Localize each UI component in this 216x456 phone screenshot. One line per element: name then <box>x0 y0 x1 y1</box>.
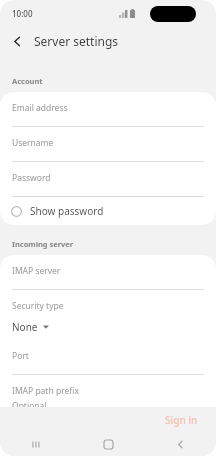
staticText: Incoming server <box>12 239 74 249</box>
staticText: Show password <box>30 204 104 218</box>
button[interactable]: Username <box>0 127 216 162</box>
button[interactable]: Back <box>6 30 28 52</box>
button[interactable]: Port <box>0 340 216 375</box>
button[interactable]: Back <box>165 433 195 456</box>
staticText: Account <box>12 76 43 86</box>
staticText: Server settings <box>34 33 119 49</box>
staticText: None <box>12 320 38 334</box>
button[interactable]: Show password <box>0 197 216 225</box>
staticText: Password <box>12 172 51 184</box>
staticText: IMAP server <box>12 265 61 277</box>
button[interactable]: IMAP server <box>0 255 216 290</box>
button[interactable]: Home <box>93 433 123 456</box>
staticText: Email address <box>12 102 68 114</box>
staticText: 10:00 <box>12 8 33 19</box>
staticText: Username <box>12 137 54 149</box>
button[interactable]: Email address <box>0 92 216 127</box>
staticText: Sign in <box>165 413 198 427</box>
button[interactable]: Recents <box>21 433 51 456</box>
button[interactable]: IMAP path prefix <box>0 375 216 426</box>
button[interactable]: Password <box>0 162 216 197</box>
staticText: IMAP path prefix <box>12 385 79 397</box>
staticText: Security type <box>12 300 64 312</box>
staticText: Port <box>12 350 29 362</box>
staticText: Optional <box>12 400 47 412</box>
button[interactable]: Security type <box>0 290 216 340</box>
button[interactable]: Sign in <box>157 409 206 431</box>
